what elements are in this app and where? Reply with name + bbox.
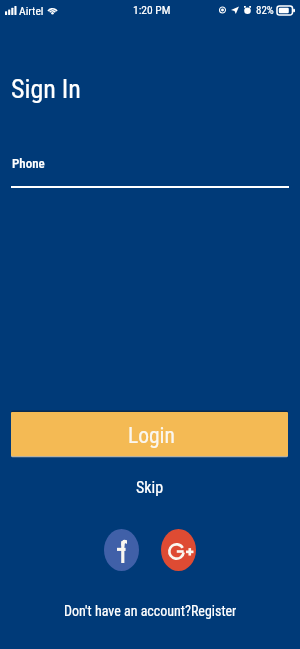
- staticText: Phone: [12, 156, 45, 171]
- button[interactable]: Sign in with Google Plus: [161, 529, 196, 571]
- staticText: Sign In: [11, 74, 81, 104]
- staticText: Don't have an account?Register: [64, 603, 237, 619]
- button[interactable]: Sign in with Facebook: [104, 529, 139, 571]
- staticText: Airtel: [19, 4, 44, 17]
- staticText: Skip: [136, 478, 164, 497]
- button[interactable]: Skip: [120, 473, 180, 502]
- staticText: Login: [128, 423, 175, 448]
- button[interactable]: Login: [11, 412, 288, 456]
- staticText: 1:20 PM: [133, 3, 171, 16]
- button[interactable]: Don't have an account?Register: [56, 600, 245, 622]
- staticText: 82%: [256, 4, 274, 17]
